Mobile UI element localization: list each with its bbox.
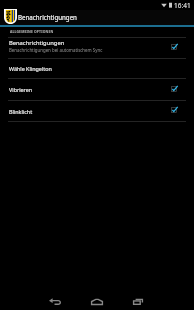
staticText: Benachrichtigungen bei automatischem Syn…	[9, 47, 103, 53]
button[interactable]: Vibrieren	[0, 79, 194, 100]
button[interactable]: Home	[85, 294, 109, 308]
staticText: ALLGEMEINE OPTIONEN	[10, 29, 54, 34]
staticText: Wähle Klingelton	[9, 65, 178, 72]
staticText: Benachrichtigungen	[9, 39, 65, 47]
button[interactable]: Benachrichtigungen	[0, 38, 194, 58]
button[interactable]: Blinklicht	[0, 101, 194, 121]
button[interactable]: Recent apps	[126, 294, 150, 308]
staticText: Blinklicht	[9, 108, 171, 115]
button[interactable]: Benachrichtigungen	[0, 10, 194, 25]
button[interactable]: Wähle Klingelton	[0, 59, 194, 78]
staticText: Vibrieren	[9, 86, 171, 93]
staticText: 16:41	[174, 1, 191, 10]
button[interactable]: Back	[43, 294, 67, 308]
staticText: Benachrichtigungen	[18, 13, 77, 21]
